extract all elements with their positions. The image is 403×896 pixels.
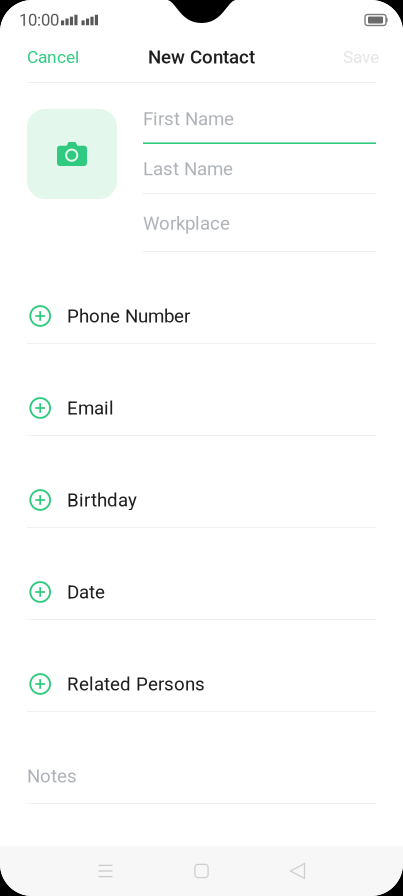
button[interactable]: Birthday	[27, 436, 376, 528]
staticText: Phone Number	[67, 305, 190, 327]
staticText: Notes	[27, 765, 77, 787]
staticText: New Contact	[148, 46, 255, 68]
button[interactable]: Email	[27, 344, 376, 436]
button[interactable]: Recent apps	[57, 846, 153, 896]
staticText: Save	[343, 47, 379, 67]
staticText: Email	[67, 397, 114, 419]
button[interactable]: Last Name	[143, 144, 376, 194]
button[interactable]: Back	[249, 846, 345, 896]
staticText: Date	[67, 581, 105, 603]
staticText: 10:00	[19, 10, 59, 30]
button[interactable]: Related Persons	[27, 620, 376, 712]
button[interactable]: Add Photo	[27, 109, 117, 199]
staticText: Birthday	[67, 489, 137, 511]
button[interactable]: Date	[27, 528, 376, 620]
staticText: Related Persons	[67, 673, 205, 695]
button[interactable]: Save	[329, 43, 403, 77]
button[interactable]: Phone Number	[27, 252, 376, 344]
button[interactable]: First Name	[143, 92, 376, 144]
button[interactable]: Cancel	[0, 43, 93, 77]
button[interactable]: Workplace	[143, 194, 376, 252]
button[interactable]: Home	[153, 846, 249, 896]
button[interactable]: Notes	[27, 712, 376, 804]
staticText: Last Name	[143, 158, 233, 180]
staticText: Workplace	[143, 212, 230, 234]
staticText: Cancel	[27, 47, 79, 67]
staticText: First Name	[143, 108, 234, 130]
